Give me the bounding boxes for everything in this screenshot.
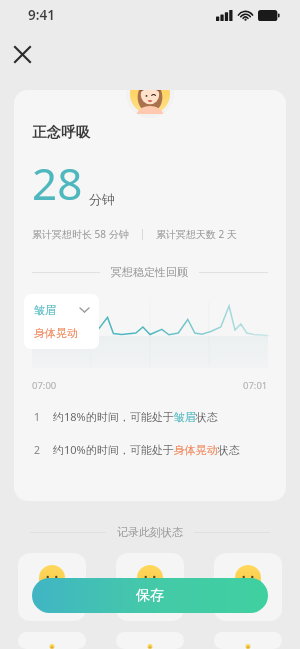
button[interactable]: Mood [116,632,184,649]
staticText: 07:01 [243,379,268,392]
staticText: 约10%的时间，可能处于身体晃动状态 [53,442,240,457]
button[interactable]: Mood [18,553,86,621]
button[interactable]: Mood [214,632,282,649]
button[interactable]: Close [6,38,38,70]
button[interactable]: Mood [214,553,282,621]
staticText: 记录此刻状态 [117,525,183,539]
button[interactable]: Mood [116,553,184,621]
staticText: 07:00 [32,379,57,392]
staticText: 累计冥想天数 2 天 [156,227,237,241]
button[interactable]: 保存 [32,578,268,613]
staticText: 皱眉 [34,303,56,317]
staticText: 身体晃动 [34,326,78,340]
staticText: 28 [32,153,83,213]
button[interactable]: 皱眉 [24,294,99,349]
staticText: 累计冥想时长 58 分钟 [32,227,129,241]
staticText: 9:41 [28,6,55,24]
staticText: 正念呼吸 [32,123,90,141]
staticText: 冥想稳定性回顾 [111,265,188,279]
staticText: 约18%的时间，可能处于皱眉状态 [53,409,218,424]
staticText: 2 [34,443,41,457]
staticText: 保存 [136,587,164,605]
button[interactable]: Mood [18,632,86,649]
staticText: 分钟 [89,191,115,207]
staticText: 1 [34,410,41,424]
